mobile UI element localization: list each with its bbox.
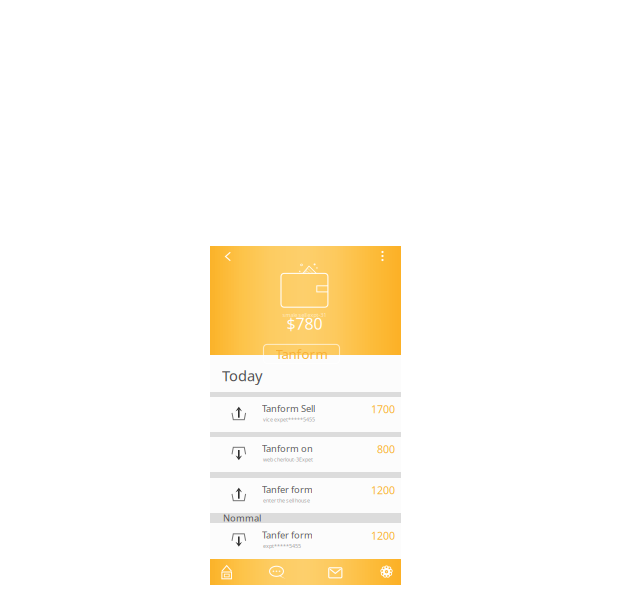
- button[interactable]: Messages: [254, 560, 302, 586]
- staticText: expt*****5455: [263, 542, 301, 550]
- staticText: vice expet*****5455: [263, 416, 315, 423]
- staticText: Tanform on: [262, 442, 313, 455]
- button[interactable]: Mail: [309, 560, 361, 586]
- staticText: enter the sell house: [263, 497, 310, 504]
- staticText: 1700: [371, 402, 395, 416]
- button[interactable]: Settings: [364, 559, 408, 585]
- staticText: web cherlout-3Expet: [263, 456, 313, 463]
- staticText: 1200: [371, 483, 395, 497]
- staticText: smale sell expt-31: [282, 311, 326, 319]
- staticText: Tanfer form: [262, 483, 313, 496]
- staticText: Today: [222, 366, 262, 385]
- button[interactable]: Tanform: [263, 344, 339, 363]
- staticText: Nommal: [223, 512, 261, 524]
- staticText: Tanform Sell: [262, 402, 315, 415]
- button[interactable]: Tanform Sell: [210, 397, 401, 432]
- button[interactable]: Tanform on: [210, 437, 401, 472]
- button[interactable]: Home: [206, 559, 248, 585]
- staticText: Tanform: [275, 345, 327, 363]
- button[interactable]: Back: [219, 247, 237, 265]
- button[interactable]: More options: [373, 247, 391, 265]
- staticText: Tanfer form: [262, 529, 313, 541]
- button[interactable]: Tanfer form: [210, 523, 401, 559]
- staticText: $780: [286, 313, 322, 334]
- staticText: 800: [377, 442, 395, 456]
- staticText: 1200: [371, 528, 395, 543]
- button[interactable]: Tanfer form: [210, 478, 401, 513]
